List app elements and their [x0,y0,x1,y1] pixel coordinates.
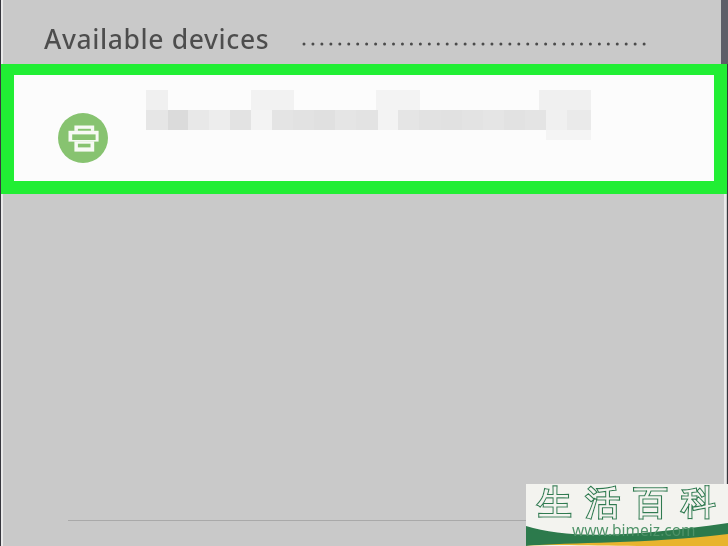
other: Printer [58,113,108,163]
staticText: www.bimeiz.com [572,519,696,540]
button[interactable]: Printer [14,75,714,181]
staticText: 生活百科 [530,482,722,525]
staticText: Available devices [44,21,270,57]
